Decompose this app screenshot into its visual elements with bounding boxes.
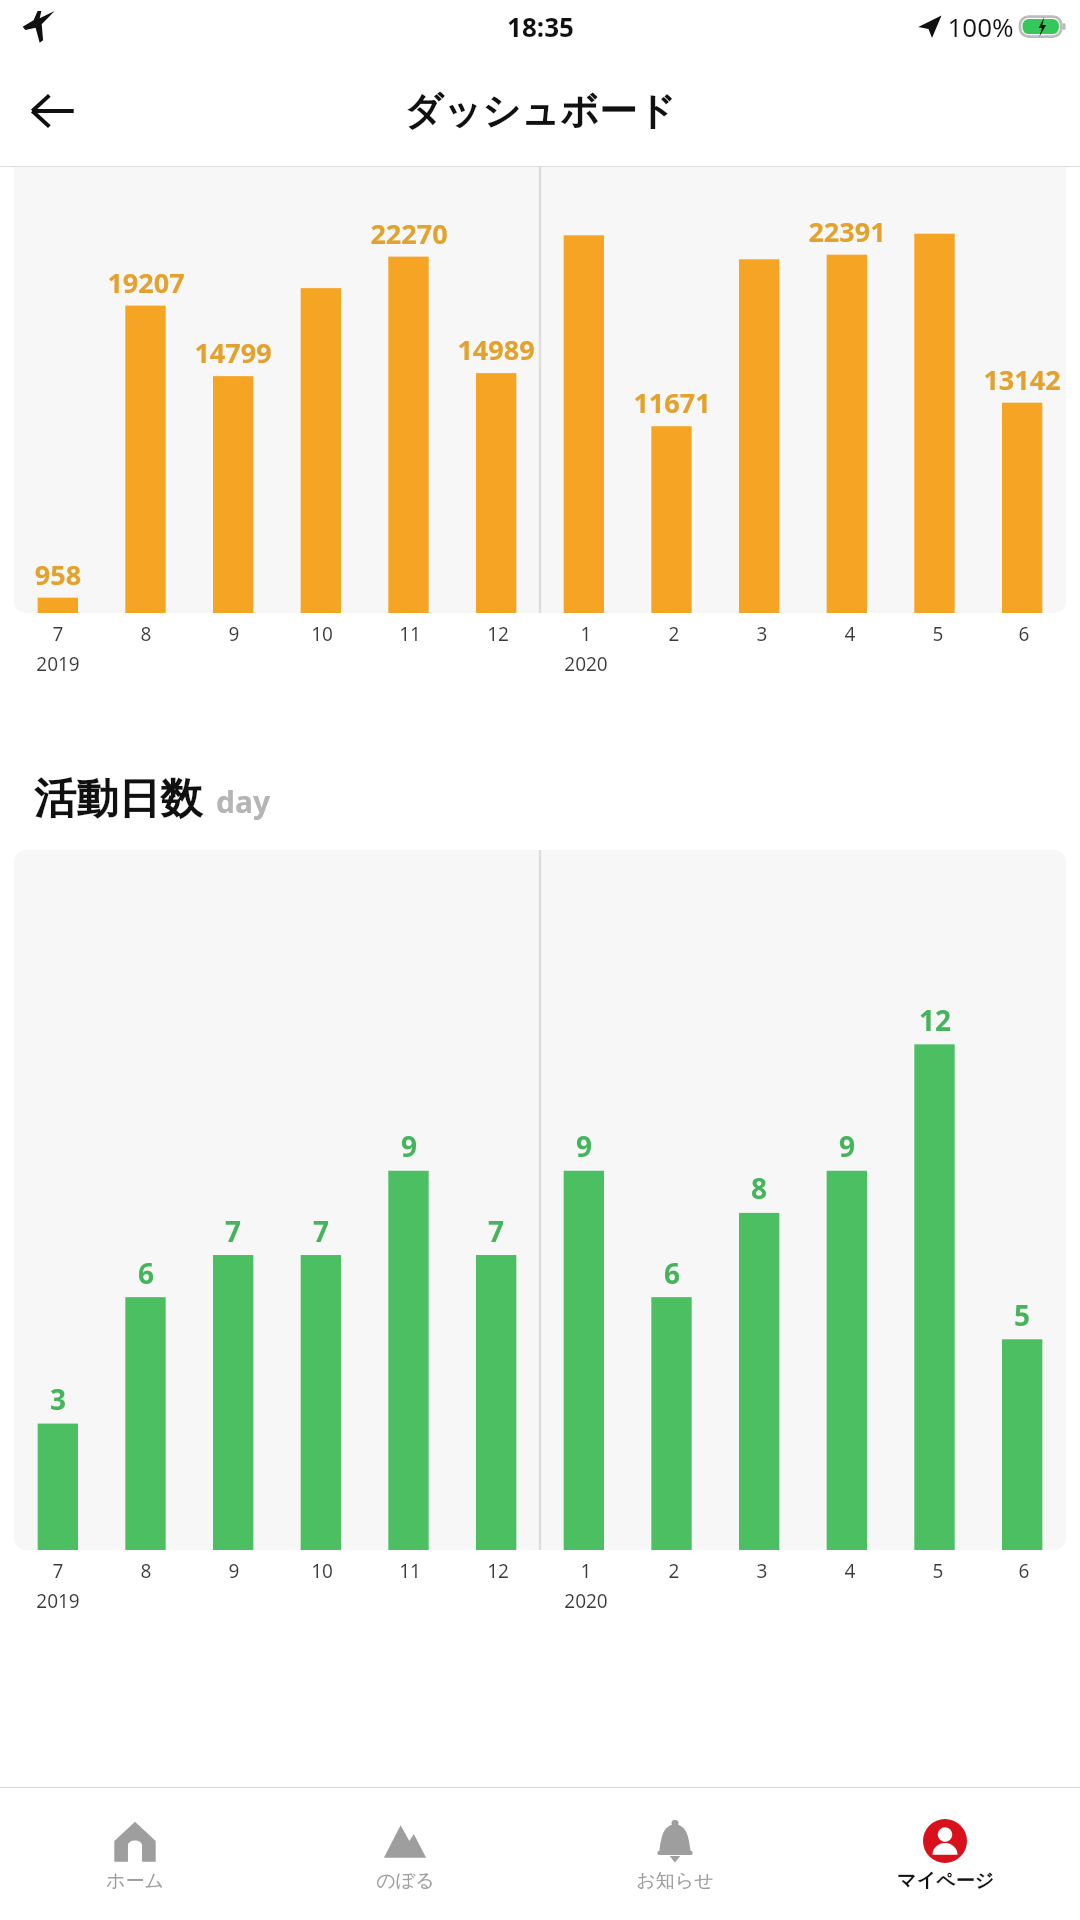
staticText: 5	[894, 1558, 982, 1584]
staticText: day	[216, 781, 271, 822]
staticText: 9	[803, 1127, 891, 1165]
staticText: 11671	[628, 384, 716, 421]
staticText: 2020	[542, 651, 630, 677]
staticText: 6	[628, 1254, 716, 1292]
staticText: 2	[630, 1558, 718, 1584]
staticText: 18:35	[507, 9, 574, 44]
staticText: 7	[14, 621, 102, 647]
staticText: お知らせ	[636, 1869, 714, 1893]
staticText: 14799	[189, 334, 277, 371]
staticText: 2	[630, 621, 718, 647]
staticText: 8	[102, 1558, 190, 1584]
staticText: 活動日数	[34, 773, 202, 826]
staticText: 3	[718, 1558, 806, 1584]
staticText: 5	[978, 1296, 1066, 1334]
staticText: 22270	[365, 215, 453, 252]
staticText: 2019	[14, 651, 102, 677]
staticText: 7	[189, 1212, 277, 1250]
staticText: のぼる	[376, 1869, 435, 1893]
staticText: 7	[14, 1558, 102, 1584]
staticText: 1	[542, 621, 630, 647]
staticText: 100%	[947, 9, 1014, 44]
staticText: マイページ	[897, 1869, 994, 1893]
staticText: 5	[894, 621, 982, 647]
staticText: 10	[278, 1558, 366, 1584]
staticText: 12	[454, 1558, 542, 1584]
staticText: 958	[14, 556, 102, 593]
button[interactable]: ホーム	[0, 1809, 270, 1899]
staticText: 12	[891, 1001, 979, 1039]
staticText: 3	[718, 621, 806, 647]
staticText: 4	[806, 1558, 894, 1584]
staticText: 9	[365, 1127, 453, 1165]
staticText: 1	[542, 1558, 630, 1584]
staticText: 8	[102, 621, 190, 647]
staticText: 19207	[102, 264, 190, 301]
staticText: 6	[982, 621, 1066, 647]
staticText: 11	[366, 1558, 454, 1584]
button[interactable]: マイページ	[810, 1809, 1080, 1899]
staticText: 12	[454, 621, 542, 647]
staticText: 22391	[803, 213, 891, 250]
staticText: ダッシュボード	[404, 87, 676, 135]
staticText: ホーム	[106, 1869, 164, 1893]
button[interactable]: のぼる	[270, 1809, 540, 1899]
staticText: 9	[540, 1127, 628, 1165]
staticText: 6	[982, 1558, 1066, 1584]
staticText: 2019	[14, 1588, 102, 1614]
staticText: 2020	[542, 1588, 630, 1614]
button[interactable]: お知らせ	[540, 1809, 810, 1899]
staticText: 6	[102, 1254, 190, 1292]
staticText: 9	[190, 1558, 278, 1584]
staticText: 10	[278, 621, 366, 647]
staticText: 9	[190, 621, 278, 647]
staticText: 7	[452, 1212, 540, 1250]
staticText: 13142	[978, 361, 1066, 398]
staticText: 11	[366, 621, 454, 647]
staticText: 4	[806, 621, 894, 647]
staticText: 7	[277, 1212, 365, 1250]
button[interactable]: Back	[22, 80, 84, 142]
staticText: 3	[14, 1380, 102, 1418]
staticText: 8	[715, 1169, 803, 1207]
staticText: 14989	[452, 331, 540, 368]
